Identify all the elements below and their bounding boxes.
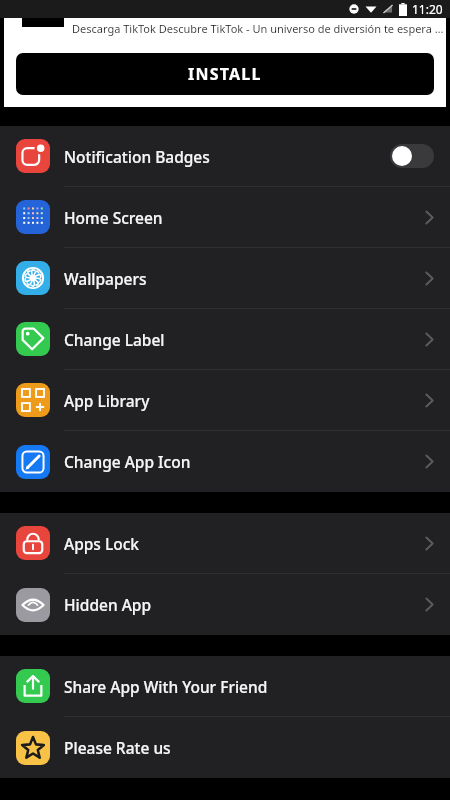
staticText: Share App With Your Friend — [64, 676, 434, 697]
staticText: App Library — [64, 390, 425, 411]
staticText: 11:20 — [412, 1, 443, 17]
button[interactable]: Hidden App — [0, 574, 450, 635]
button[interactable]: Apps Lock — [0, 513, 450, 574]
button[interactable]: Home Screen — [0, 187, 450, 248]
button[interactable]: Share App With Your Friend — [0, 656, 450, 717]
staticText: Hidden App — [64, 594, 425, 615]
button[interactable]: Notification Badges — [0, 126, 450, 187]
button[interactable]: Notification badges toggle — [390, 144, 434, 168]
staticText: Please Rate us — [64, 737, 434, 758]
button[interactable]: Please Rate us — [0, 717, 450, 778]
button[interactable]: App Library — [0, 370, 450, 431]
button[interactable]: Change App Icon — [0, 431, 450, 492]
staticText: Apps Lock — [64, 533, 425, 554]
button[interactable]: INSTALL — [16, 53, 434, 95]
staticText: INSTALL — [188, 63, 262, 85]
staticText: Descarga TikTok Descubre TikTok - Un uni… — [72, 21, 446, 36]
staticText: Wallpapers — [64, 268, 425, 289]
staticText: Home Screen — [64, 207, 425, 228]
button[interactable]: Change Label — [0, 309, 450, 370]
staticText: Notification Badges — [64, 146, 390, 167]
button[interactable]: Wallpapers — [0, 248, 450, 309]
staticText: Change Label — [64, 329, 425, 350]
staticText: Change App Icon — [64, 451, 425, 472]
